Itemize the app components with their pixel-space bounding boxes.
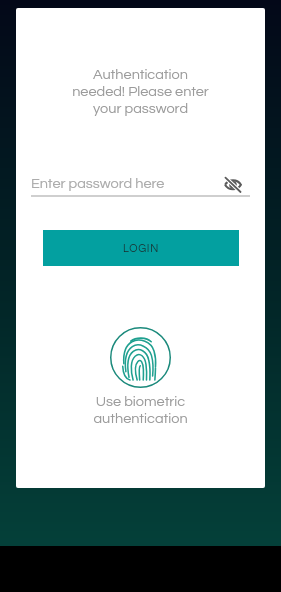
staticText: Authentication needed! Please enter your…	[16, 67, 265, 116]
staticText: Use biometric authentication	[93, 394, 188, 426]
button[interactable]: Use biometric authentication	[93, 327, 188, 426]
button[interactable]: LOGIN	[43, 230, 239, 266]
button[interactable]: Show password	[220, 172, 246, 194]
staticText: Enter password here	[31, 176, 165, 191]
staticText: LOGIN	[123, 243, 159, 254]
